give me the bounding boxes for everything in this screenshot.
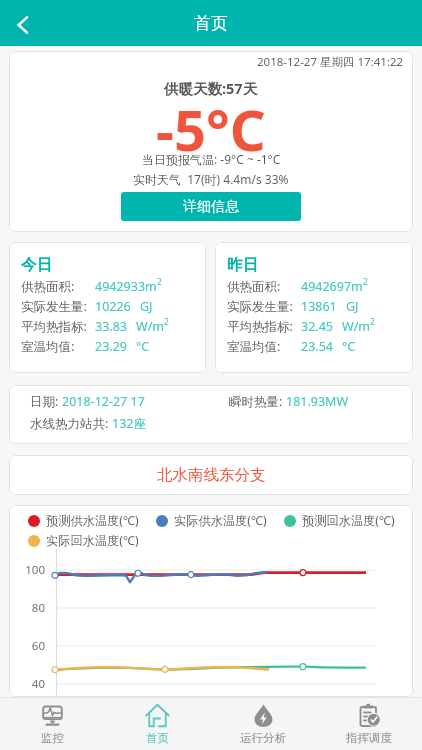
staticText: 首页 bbox=[194, 13, 228, 34]
staticText: 60 bbox=[9, 638, 45, 654]
staticText: 室温均值: bbox=[21, 338, 75, 355]
staticText: 瞬时热量: bbox=[229, 393, 286, 410]
staticText: 实际回水温度(℃) bbox=[46, 532, 139, 549]
staticText: GJ bbox=[140, 298, 153, 315]
staticText: 33.83 bbox=[95, 318, 127, 335]
staticText: 10226 bbox=[95, 298, 131, 315]
staticText: 室温均值: bbox=[227, 338, 281, 355]
staticText: 80 bbox=[9, 600, 45, 616]
staticText: 首页 bbox=[146, 731, 169, 745]
staticText: 23.29 bbox=[95, 338, 127, 355]
staticText: 监控 bbox=[41, 731, 64, 745]
staticText: 供热面积: bbox=[21, 278, 75, 295]
staticText: 2 bbox=[157, 276, 162, 288]
staticText: 昨日 bbox=[227, 255, 258, 275]
staticText: 当日预报气温: -9°C ~ -1°C bbox=[142, 151, 281, 167]
staticText: 供暖天数:57天 bbox=[164, 78, 258, 98]
staticText: 4942697m bbox=[301, 278, 363, 295]
staticText: W/m bbox=[136, 318, 164, 335]
staticText: W/m bbox=[342, 318, 370, 335]
staticText: 北水南线东分支 bbox=[157, 465, 266, 485]
staticText: 2 bbox=[164, 316, 169, 328]
staticText: 运行分析 bbox=[240, 731, 286, 745]
staticText: 平均热指标: bbox=[21, 318, 87, 335]
staticText: 实际供水温度(℃) bbox=[174, 512, 267, 529]
staticText: 2018-12-27 17 bbox=[62, 393, 145, 410]
staticText: GJ bbox=[346, 298, 359, 315]
staticText: 日期: bbox=[30, 393, 62, 410]
button[interactable]: 北水南线东分支 bbox=[9, 455, 413, 495]
staticText: 实际发生量: bbox=[227, 298, 293, 315]
button[interactable]: 详细信息 bbox=[121, 192, 301, 221]
staticText: 实际发生量: bbox=[21, 298, 87, 315]
staticText: 详细信息 bbox=[183, 198, 239, 216]
button[interactable]: 指挥调度 bbox=[316, 698, 422, 750]
staticText: 预测供水温度(℃) bbox=[46, 512, 139, 529]
staticText: 40 bbox=[9, 676, 45, 692]
staticText: 4942933m bbox=[95, 278, 157, 295]
button[interactable]: 运行分析 bbox=[210, 698, 316, 750]
staticText: °C bbox=[342, 338, 356, 355]
staticText: 32.45 bbox=[301, 318, 333, 335]
staticText: 100 bbox=[9, 562, 45, 578]
button[interactable]: 监控 bbox=[0, 698, 105, 750]
button[interactable]: Back bbox=[0, 0, 46, 46]
staticText: 水线热力站共: bbox=[30, 415, 112, 432]
staticText: -5°C bbox=[156, 91, 266, 167]
staticText: 实时天气 17(时) 4.4m/s 33% bbox=[133, 171, 289, 187]
staticText: 2 bbox=[370, 316, 375, 328]
staticText: 2 bbox=[363, 276, 368, 288]
staticText: 预测回水温度(℃) bbox=[302, 512, 395, 529]
staticText: 2018-12-27 星期四 17:41:22 bbox=[257, 54, 404, 70]
staticText: 指挥调度 bbox=[346, 731, 392, 745]
staticText: 181.93MW bbox=[286, 393, 349, 410]
staticText: 今日 bbox=[21, 255, 52, 275]
staticText: 132座 bbox=[112, 415, 146, 432]
staticText: °C bbox=[136, 338, 150, 355]
staticText: 23.54 bbox=[301, 338, 333, 355]
staticText: 13861 bbox=[301, 298, 337, 315]
staticText: 供热面积: bbox=[227, 278, 281, 295]
button[interactable]: 首页 bbox=[105, 698, 210, 750]
staticText: 平均热指标: bbox=[227, 318, 293, 335]
